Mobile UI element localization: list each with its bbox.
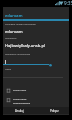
staticText: zaawansowane: [13, 101, 31, 104]
staticText: Tożsamość anonimowa: [5, 53, 30, 56]
button[interactable]: Połącz: [38, 107, 71, 114]
button[interactable]: Anuluj: [3, 107, 36, 114]
staticText: Hajlowiylkaly.unsb.pl: [5, 43, 46, 49]
staticText: Pokaż opcje: [13, 97, 27, 100]
button[interactable]: [3, 96, 69, 106]
staticText: Anuluj: [15, 109, 24, 113]
staticText: Połącz: [50, 109, 59, 113]
staticText: Tożsamość: [5, 37, 17, 40]
staticText: Certyfikat urzędu certyfikacji: [5, 23, 36, 26]
staticText: Pokaż hasło: [13, 88, 27, 91]
button[interactable]: [3, 87, 69, 95]
staticText: 9:35: [64, 0, 72, 6]
staticText: eduroam: [5, 29, 23, 35]
staticText: Hasło: [5, 68, 12, 71]
staticText: eduroam: [5, 13, 23, 18]
